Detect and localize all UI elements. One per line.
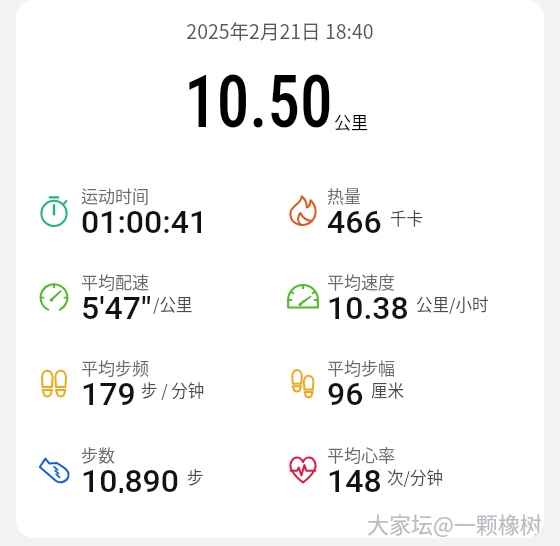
staticText: 千卡 xyxy=(390,206,423,230)
button[interactable]: 平均速度 xyxy=(327,269,527,325)
button[interactable]: 热量 xyxy=(285,193,321,229)
button[interactable]: 平均配速 xyxy=(81,269,281,325)
staticText: 公里/小时 xyxy=(416,292,489,316)
button[interactable]: 平均步频 xyxy=(81,355,281,411)
button[interactable]: 平均步幅 xyxy=(285,365,321,401)
button[interactable]: 运动时间 xyxy=(36,193,72,229)
staticText: 10.38 xyxy=(327,289,409,320)
staticText: 厘米 xyxy=(371,378,404,402)
staticText: 平均心率 xyxy=(327,442,395,467)
staticText: 步 xyxy=(187,465,204,489)
staticText: /公里 xyxy=(153,292,193,316)
staticText: 公里 xyxy=(334,109,368,134)
staticText: 步 / 分钟 xyxy=(141,378,205,402)
button[interactable]: 平均步频 xyxy=(36,365,72,401)
button[interactable]: 步数 xyxy=(81,442,281,498)
staticText: 01:00:41 xyxy=(81,203,208,234)
button[interactable]: 运动时间 xyxy=(81,183,281,239)
button[interactable]: 步数 xyxy=(36,452,72,488)
staticText: 466 xyxy=(327,203,382,234)
staticText: 96 xyxy=(327,375,364,406)
button[interactable]: 平均心率 xyxy=(327,442,527,498)
staticText: 平均配速 xyxy=(81,269,149,294)
staticText: 2025年2月21日 18:40 xyxy=(16,16,544,44)
button[interactable]: 平均步幅 xyxy=(327,355,527,411)
staticText: 平均步频 xyxy=(81,355,149,380)
staticText: 5'47" xyxy=(81,289,152,320)
staticText: 10.50 xyxy=(184,59,333,145)
button[interactable]: 平均心率 xyxy=(285,452,321,488)
staticText: 10,890 xyxy=(81,462,179,493)
button[interactable]: 热量 xyxy=(327,183,527,239)
button[interactable]: 平均配速 xyxy=(36,279,72,315)
button[interactable]: 平均速度 xyxy=(285,279,321,315)
staticText: 平均速度 xyxy=(327,269,395,294)
staticText: 148 xyxy=(327,462,382,493)
staticText: 步数 xyxy=(81,442,115,467)
staticText: 次/分钟 xyxy=(387,465,443,489)
staticText: 大家坛@一颗橡树 xyxy=(367,507,542,538)
staticText: 热量 xyxy=(327,183,361,208)
staticText: 运动时间 xyxy=(81,183,149,208)
staticText: 179 xyxy=(81,375,136,406)
staticText: 平均步幅 xyxy=(327,355,395,380)
